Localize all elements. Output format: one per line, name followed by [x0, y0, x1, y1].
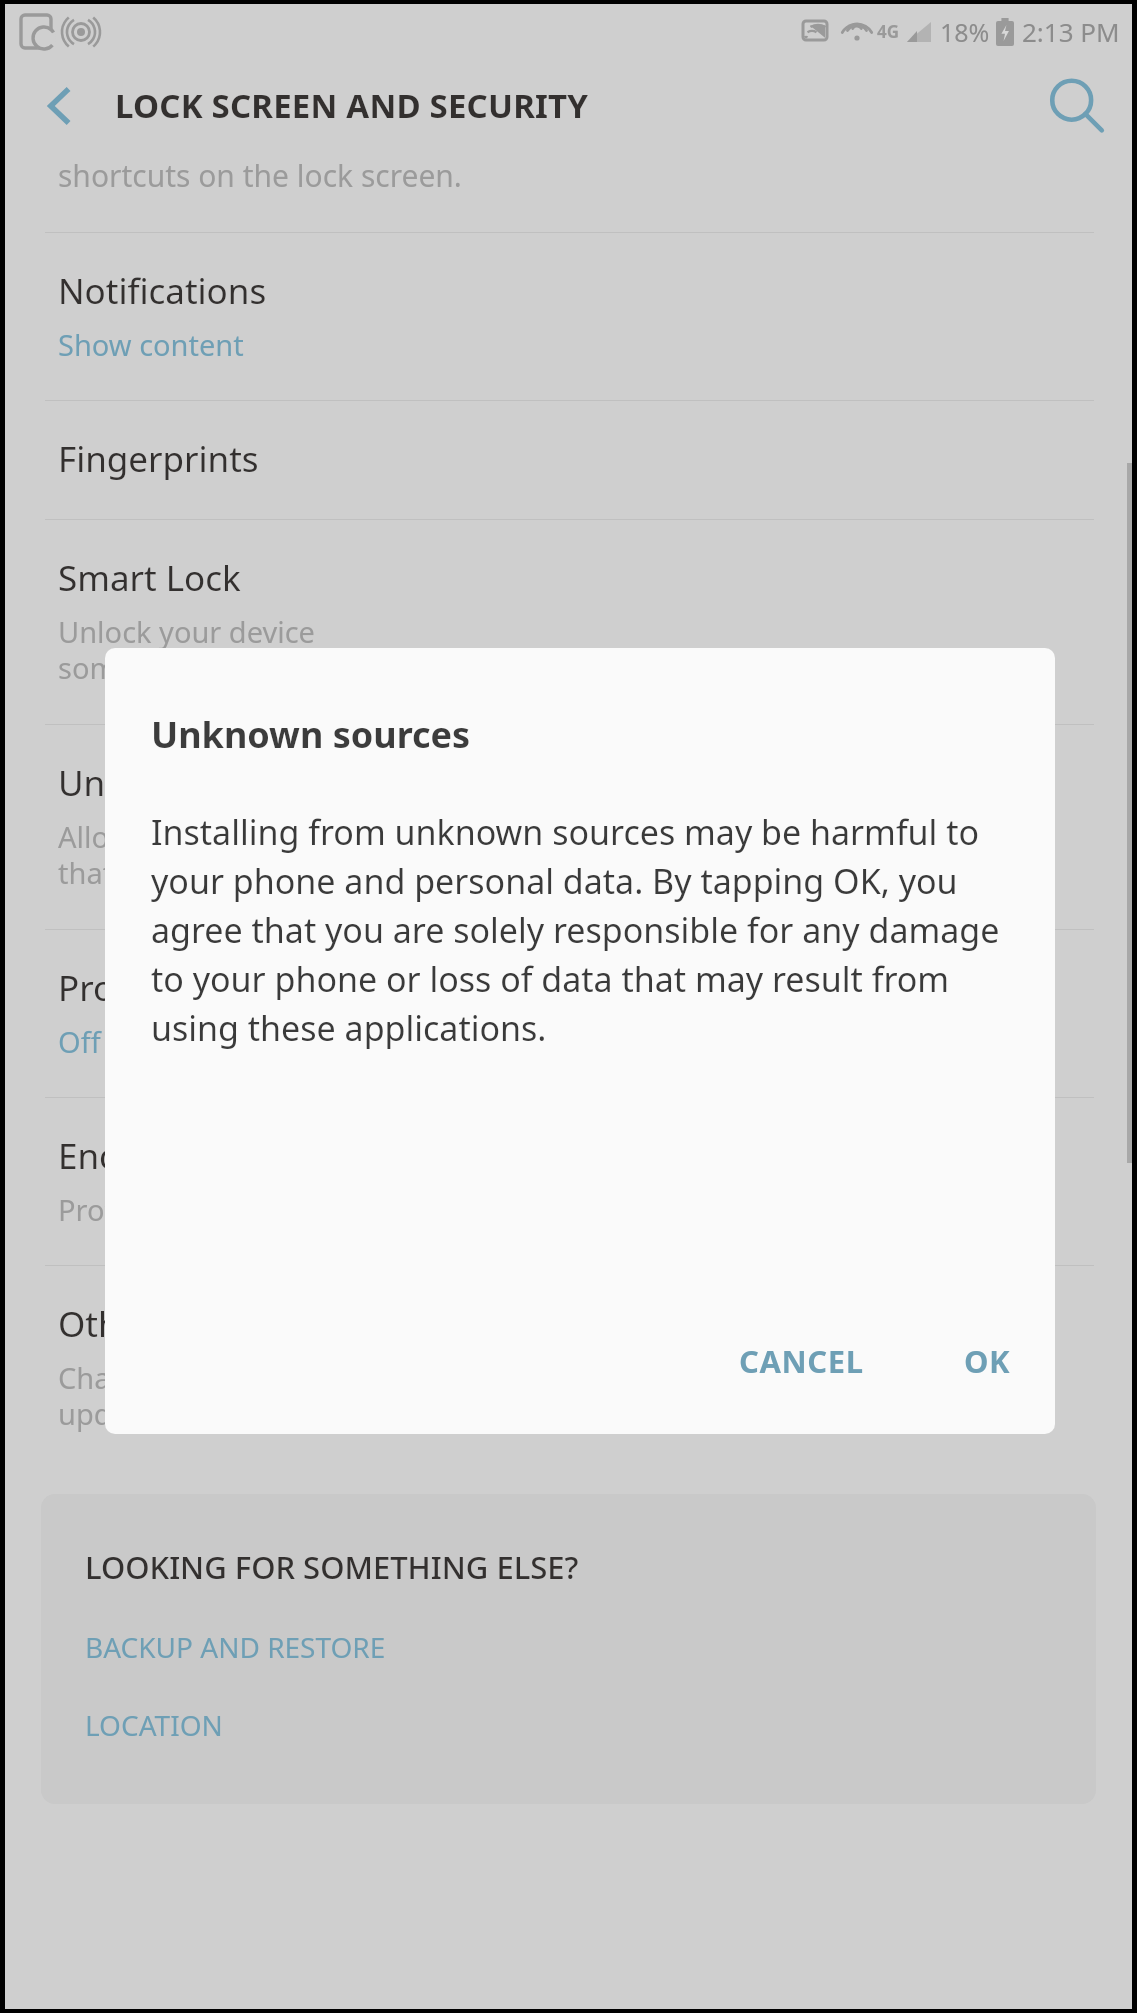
staticText: CANCEL	[739, 1340, 864, 1382]
button[interactable]: Unknown sources	[5, 725, 1132, 929]
staticText: LOOKING FOR SOMETHING ELSE?	[85, 1546, 579, 1588]
button[interactable]: Notifications	[5, 233, 1132, 400]
staticText: Notifications	[58, 267, 267, 315]
staticText: Unlock your device somewhere	[58, 612, 315, 688]
staticText: Change other security settings, such as …	[58, 1358, 837, 1434]
staticText: Fingerprints	[58, 435, 259, 483]
staticText: OK	[964, 1340, 1011, 1382]
staticText: 4G	[877, 20, 900, 43]
button[interactable]: Other security settings	[5, 1266, 1132, 1470]
staticText: Protect your data	[58, 1190, 294, 1229]
staticText: Installing from unknown sources may be h…	[151, 809, 1013, 1051]
button[interactable]: Fingerprints	[5, 401, 1132, 519]
staticText: Unknown sources	[151, 710, 471, 759]
staticText: Allow installation of apps that are not	[58, 817, 398, 893]
staticText: LOCATION	[85, 1706, 223, 1744]
button[interactable]: Search	[1040, 70, 1112, 142]
button[interactable]: CANCEL	[713, 1326, 890, 1396]
staticText: Other security settings	[58, 1300, 432, 1348]
button[interactable]: Encrypt SD card	[5, 1098, 1132, 1265]
staticText: Encrypt SD card	[58, 1132, 318, 1180]
button[interactable]: OK	[938, 1326, 1037, 1396]
staticText: Protect encrypted data	[58, 964, 434, 1012]
staticText: Unknown sources	[58, 759, 351, 807]
button[interactable]: Protect encrypted data	[5, 930, 1132, 1097]
staticText: shortcuts on the lock screen.	[58, 155, 462, 196]
staticText: Show content	[58, 325, 244, 364]
staticText: BACKUP AND RESTORE	[85, 1628, 386, 1666]
button[interactable]: Back	[27, 73, 93, 139]
button[interactable]: Smart Lock	[5, 520, 1132, 724]
staticText: LOCK SCREEN AND SECURITY	[115, 83, 589, 128]
staticText: Off	[58, 1022, 101, 1061]
button[interactable]: BACKUP AND RESTORE	[85, 1628, 386, 1666]
staticText: Smart Lock	[58, 554, 241, 602]
staticText: 2:13 PM	[1022, 14, 1120, 49]
button[interactable]: LOCATION	[85, 1706, 223, 1744]
staticText: 18%	[940, 15, 990, 49]
